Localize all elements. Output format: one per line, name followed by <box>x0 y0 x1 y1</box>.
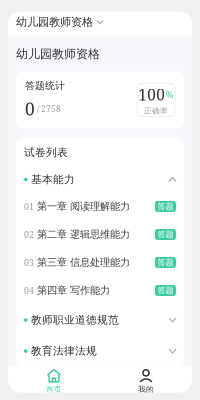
staticText: 第四章 写作能力 <box>37 284 110 297</box>
button[interactable]: 01 <box>16 192 184 220</box>
staticText: 答题 <box>157 285 173 296</box>
staticText: 我的 <box>138 385 154 394</box>
staticText: / 2758 <box>37 103 61 114</box>
button[interactable]: 我的 <box>100 366 192 396</box>
staticText: 首页 <box>46 385 62 394</box>
button[interactable]: 02 <box>16 220 184 248</box>
button[interactable]: 04 <box>16 276 184 304</box>
button[interactable]: 基本能力 <box>16 166 184 192</box>
staticText: 01 <box>24 200 34 212</box>
staticText: 02 <box>24 228 34 240</box>
staticText: 基本能力 <box>31 173 75 186</box>
staticText: 第二章 逻辑思维能力 <box>37 228 130 241</box>
staticText: 试卷列表 <box>24 146 68 159</box>
staticText: 03 <box>24 256 34 268</box>
staticText: 教育法律法规 <box>31 344 97 358</box>
staticText: 04 <box>24 284 34 296</box>
staticText: 答题 <box>157 201 173 212</box>
button[interactable]: 03 <box>16 248 184 276</box>
staticText: 答题 <box>157 257 173 268</box>
staticText: % <box>166 89 174 100</box>
staticText: 答题 <box>157 229 173 240</box>
staticText: 正确率 <box>144 106 168 116</box>
button[interactable]: 首页 <box>8 366 100 396</box>
staticText: 100 <box>138 84 165 105</box>
staticText: 第一章 阅读理解能力 <box>37 200 130 213</box>
staticText: 幼儿园教师资格 <box>16 46 100 61</box>
staticText: 第三章 信息处理能力 <box>37 256 130 269</box>
staticText: 答题统计 <box>25 79 65 92</box>
button[interactable]: 教师职业道德规范 <box>16 304 184 335</box>
staticText: 0 <box>25 97 35 120</box>
button[interactable]: 幼儿园教师资格 <box>8 7 192 36</box>
staticText: 教师职业道德规范 <box>31 313 119 327</box>
staticText: 幼儿园教师资格 <box>16 15 93 29</box>
button[interactable]: 教育法律法规 <box>16 335 184 366</box>
